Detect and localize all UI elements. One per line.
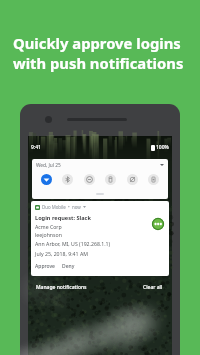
button[interactable]: Flashlight <box>105 174 116 185</box>
staticText: Wed, Jul 25 <box>36 162 61 169</box>
button[interactable]: Deny <box>62 263 75 270</box>
staticText: July 25, 2018, 9:41 AM <box>35 250 88 257</box>
staticText: Quickly approve logins with push notific… <box>13 33 184 73</box>
staticText: Ann Arbor, MI, US (192.268.1.1) <box>35 240 111 247</box>
staticText: leejohnson <box>35 231 62 238</box>
staticText: 9:41 <box>31 144 41 151</box>
staticText: 100% <box>156 144 169 151</box>
button[interactable]: Approve <box>35 263 55 270</box>
staticText: • <box>68 204 70 210</box>
staticText: Login request: Slack <box>35 214 91 222</box>
button[interactable]: Manage notifications <box>36 284 87 291</box>
staticText: Duo Mobile <box>42 204 66 210</box>
button[interactable]: Clear all <box>143 284 163 291</box>
button[interactable]: Bluetooth <box>62 174 73 185</box>
button[interactable]: Wi-Fi <box>41 174 52 185</box>
staticText: Acme Corp <box>35 223 62 230</box>
button[interactable]: Duo Mobile <box>31 201 169 276</box>
button[interactable]: Do not disturb <box>84 174 95 185</box>
button[interactable]: Battery saver <box>148 174 159 185</box>
staticText: now <box>72 204 81 210</box>
button[interactable]: Auto rotate <box>127 174 138 185</box>
